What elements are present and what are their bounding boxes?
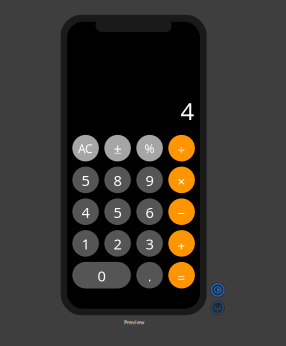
staticText: .	[148, 266, 152, 285]
staticText: 1	[82, 234, 90, 254]
button[interactable]: 2	[104, 230, 131, 257]
button[interactable]: ×	[168, 167, 195, 193]
staticText: 5	[82, 171, 90, 190]
button[interactable]: ÷	[168, 135, 195, 161]
staticText: 9	[146, 171, 154, 190]
button[interactable]: =	[168, 262, 195, 288]
staticText: 5	[114, 202, 122, 222]
staticText: Preview	[124, 319, 144, 326]
staticText: AC	[78, 141, 93, 156]
button[interactable]: +	[168, 230, 195, 257]
button[interactable]: 6	[136, 198, 163, 225]
button[interactable]: 1	[72, 230, 99, 257]
staticText: 2	[114, 234, 122, 254]
button[interactable]: %	[136, 135, 163, 161]
button[interactable]: 9	[136, 167, 163, 193]
button[interactable]: ±	[104, 135, 131, 161]
staticText: −	[178, 204, 186, 222]
staticText: ×	[178, 172, 186, 190]
button[interactable]: 5	[72, 167, 99, 193]
staticText: =	[178, 269, 186, 286]
staticText: ±	[114, 139, 122, 158]
staticText: ÷	[178, 140, 186, 158]
button[interactable]: 3	[136, 230, 163, 257]
staticText: 4	[180, 95, 194, 127]
staticText: 0	[98, 266, 106, 285]
button[interactable]: Inspect Preview	[210, 300, 226, 316]
button[interactable]: −	[168, 198, 195, 225]
staticText: 3	[146, 234, 154, 254]
staticText: 8	[114, 171, 122, 190]
staticText: 4	[82, 202, 90, 222]
button[interactable]: 5	[104, 198, 131, 225]
button[interactable]: 0	[72, 262, 131, 288]
button[interactable]: AC	[72, 135, 99, 161]
button[interactable]: 4	[72, 198, 99, 225]
staticText: +	[178, 236, 186, 254]
staticText: %	[145, 141, 155, 156]
button[interactable]: Live Preview	[210, 282, 226, 298]
staticText: 6	[146, 202, 154, 222]
button[interactable]: .	[136, 262, 163, 288]
button[interactable]: 8	[104, 167, 131, 193]
